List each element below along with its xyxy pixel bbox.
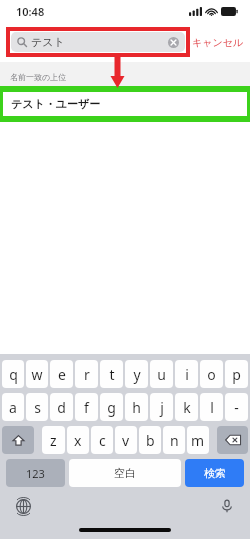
staticText: b [146,431,155,450]
staticText: z [50,431,57,450]
button[interactable]: m [187,426,209,454]
staticText: x [74,431,82,450]
staticText: s [34,398,41,417]
staticText: 検索 [204,466,226,480]
button[interactable]: Clear text [168,37,179,48]
staticText: テスト・ユーザー [11,97,101,111]
button[interactable]: f [75,393,98,421]
staticText: h [132,398,141,417]
staticText: d [57,398,66,417]
button[interactable]: q [2,360,24,388]
staticText: y [133,365,141,384]
button[interactable]: h [125,393,148,421]
button[interactable]: Switch keyboard language [12,495,34,517]
staticText: m [191,431,205,450]
staticText: e [58,365,66,384]
button[interactable]: z [42,426,65,454]
staticText: t [109,365,115,384]
button[interactable]: u [150,360,173,388]
button[interactable]: y [125,360,148,388]
button[interactable]: 空白 [69,459,181,487]
staticText: c [99,431,106,450]
staticText: - [234,398,239,417]
button[interactable]: Shift [2,426,34,454]
button[interactable]: 123 [6,459,65,487]
staticText: テスト [31,35,65,49]
staticText: 123 [26,466,45,481]
button[interactable]: p [225,360,248,388]
button[interactable]: b [139,426,161,454]
staticText: f [84,398,89,417]
staticText: v [122,431,130,450]
button[interactable]: Backspace [217,426,248,454]
button[interactable]: c [91,426,113,454]
staticText: r [84,365,90,384]
button[interactable]: i [175,360,198,388]
button[interactable]: d [50,393,73,421]
button[interactable]: g [100,393,123,421]
button[interactable]: l [200,393,223,421]
staticText: w [31,365,43,384]
staticText: 空白 [114,466,136,480]
button[interactable]: w [26,360,48,388]
staticText: 10:48 [16,4,45,19]
staticText: g [107,398,116,417]
staticText: u [157,365,166,384]
button[interactable]: j [150,393,173,421]
staticText: p [232,365,241,384]
button[interactable]: テスト [8,29,188,55]
button[interactable]: r [75,360,98,388]
button[interactable]: x [67,426,89,454]
button[interactable]: k [175,393,198,421]
staticText: n [170,431,179,450]
button[interactable]: Voice input [216,495,238,517]
button[interactable]: n [163,426,185,454]
staticText: j [160,398,164,417]
button[interactable]: キャンセル [192,36,244,49]
button[interactable]: 検索 [185,459,244,487]
button[interactable]: t [100,360,123,388]
button[interactable]: s [26,393,48,421]
button[interactable]: v [115,426,137,454]
button[interactable]: - [225,393,248,421]
staticText: l [210,398,214,417]
staticText: k [183,398,191,417]
staticText: キャンセル [192,36,244,49]
staticText: q [9,365,18,384]
staticText: i [185,365,189,384]
staticText: a [9,398,17,417]
staticText: 名前一致の上位 [10,72,67,82]
button[interactable]: a [2,393,24,421]
button[interactable]: テスト・ユーザー [0,89,250,119]
button[interactable]: e [50,360,73,388]
staticText: o [207,365,216,384]
button[interactable]: o [200,360,223,388]
